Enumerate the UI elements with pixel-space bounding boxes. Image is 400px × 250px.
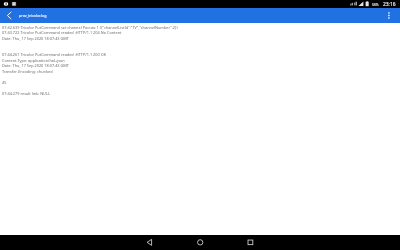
button[interactable]: Navigate up bbox=[0, 8, 18, 23]
staticText: 07:44.261 Tricolor PutCommand readed :HT… bbox=[2, 52, 107, 57]
staticText: Transfer-Encoding: chunked bbox=[2, 69, 53, 74]
button[interactable]: Home bbox=[186, 235, 216, 250]
staticText: Date: Thu, 17 Sep 2020 18:07:43 GMT bbox=[2, 63, 69, 68]
staticText: 45 bbox=[2, 80, 7, 85]
button[interactable]: Recent apps bbox=[236, 235, 266, 250]
staticText: Content-Type: application/hal+json bbox=[2, 58, 65, 63]
staticText: 23:16 bbox=[383, 1, 396, 8]
button[interactable]: Back bbox=[135, 235, 165, 250]
staticText: 56% bbox=[372, 2, 379, 6]
staticText: 07:42.639 Tricolor PutCommand set channe… bbox=[2, 25, 178, 30]
staticText: Date: Thu, 17 Sep 2020 18:07:43 GMT bbox=[2, 36, 69, 41]
staticText: 07:43.722 Tricolor PutCommand readed :HT… bbox=[2, 30, 122, 35]
staticText: prov_tricolor.log bbox=[19, 13, 47, 18]
button[interactable]: More options bbox=[382, 8, 400, 23]
staticText: 07:44.279 result link: NULL bbox=[2, 91, 50, 96]
